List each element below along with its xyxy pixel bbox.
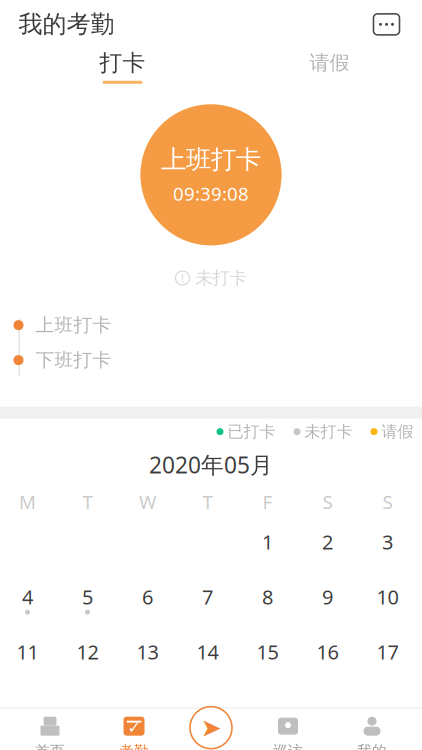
button[interactable]: 16 — [297, 636, 357, 676]
button[interactable]: 11 — [0, 636, 57, 676]
staticText: 5 — [82, 583, 93, 610]
button[interactable]: 3 — [357, 526, 417, 566]
staticText: S — [322, 489, 332, 514]
staticText: 14 — [196, 638, 218, 665]
staticText: 09:39:08 — [173, 181, 249, 206]
button[interactable]: 8 — [237, 581, 297, 621]
staticText: 11 — [16, 638, 38, 665]
staticText: ✓ — [127, 719, 140, 737]
button[interactable]: 巡访 — [246, 712, 330, 750]
staticText: 4 — [22, 583, 33, 610]
staticText: 2 — [322, 528, 333, 555]
button[interactable]: 5 — [57, 581, 117, 621]
button[interactable]: 4 — [0, 581, 57, 621]
button[interactable]: 17 — [357, 636, 417, 676]
button[interactable]: ✓ — [92, 712, 176, 750]
staticText: 请假 — [309, 51, 349, 75]
button[interactable]: 1 — [237, 526, 297, 566]
staticText: 已打卡 — [227, 422, 275, 441]
button[interactable]: 14 — [177, 636, 237, 676]
staticText: 1 — [262, 528, 273, 555]
staticText: 上班打卡 — [161, 144, 261, 175]
staticText: 16 — [316, 638, 338, 665]
staticText: 首页 — [35, 742, 65, 750]
staticText: 6 — [142, 583, 153, 610]
button[interactable]: 7 — [177, 581, 237, 621]
staticText: F — [262, 489, 272, 514]
staticText: 2020年05月 — [149, 450, 273, 480]
staticText: ! — [181, 270, 184, 286]
staticText: 未打卡 — [304, 422, 352, 441]
button[interactable]: 6 — [117, 581, 177, 621]
button[interactable]: 10 — [357, 581, 417, 621]
staticText: 未打卡 — [195, 267, 246, 289]
staticText: 请假 — [381, 422, 413, 441]
staticText: 下班打卡 — [35, 349, 111, 372]
staticText: 10 — [376, 583, 398, 610]
staticText: 我的考勤 — [18, 10, 114, 39]
staticText: 我的 — [357, 742, 387, 750]
button[interactable]: 15 — [237, 636, 297, 676]
staticText: 3 — [382, 528, 393, 555]
button[interactable]: 13 — [117, 636, 177, 676]
staticText: M — [19, 489, 36, 514]
button[interactable]: Messages — [369, 9, 403, 39]
staticText: 打卡 — [99, 49, 145, 77]
staticText: 9 — [322, 583, 333, 610]
staticText: 巡访 — [273, 742, 303, 750]
staticText: W — [139, 489, 156, 514]
button[interactable]: 打卡 — [84, 49, 160, 84]
button[interactable]: 上班打卡 — [140, 104, 281, 245]
button[interactable]: ➤ — [176, 706, 246, 750]
staticText: 7 — [202, 583, 213, 610]
staticText: T — [202, 489, 212, 514]
staticText: ➤ — [200, 713, 221, 742]
button[interactable]: 9 — [297, 581, 357, 621]
button[interactable]: 首页 — [8, 712, 92, 750]
staticText: 考勤 — [119, 742, 149, 750]
staticText: T — [82, 489, 92, 514]
staticText: 13 — [136, 638, 158, 665]
staticText: 15 — [256, 638, 278, 665]
staticText: 17 — [376, 638, 398, 665]
staticText: 8 — [262, 583, 273, 610]
button[interactable]: 2 — [297, 526, 357, 566]
staticText: S — [382, 489, 392, 514]
staticText: 上班打卡 — [35, 314, 111, 337]
button[interactable]: 12 — [57, 636, 117, 676]
button[interactable]: 我的 — [330, 712, 414, 750]
staticText: 12 — [76, 638, 98, 665]
button[interactable]: 请假 — [291, 51, 367, 82]
